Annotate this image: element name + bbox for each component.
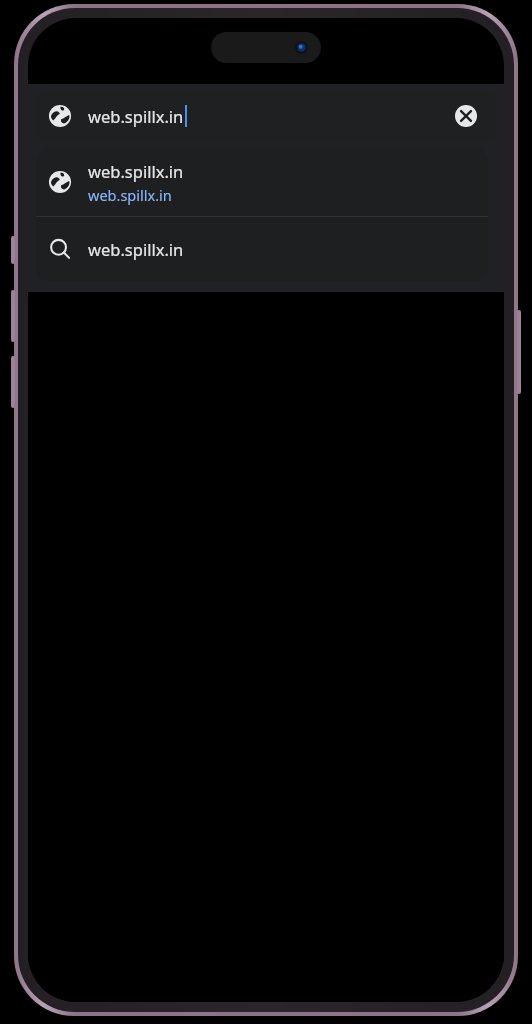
staticText: web.spillx.in xyxy=(88,238,184,260)
staticText: web.spillx.in xyxy=(88,185,172,205)
button[interactable]: Clear text xyxy=(448,98,484,134)
staticText: web.spillx.in xyxy=(88,160,184,182)
staticText: web.spillx.in xyxy=(88,105,184,127)
button[interactable]: web.spillx.in xyxy=(36,90,496,141)
button[interactable]: web.spillx.in xyxy=(36,148,488,216)
button[interactable]: web.spillx.in xyxy=(36,217,488,281)
